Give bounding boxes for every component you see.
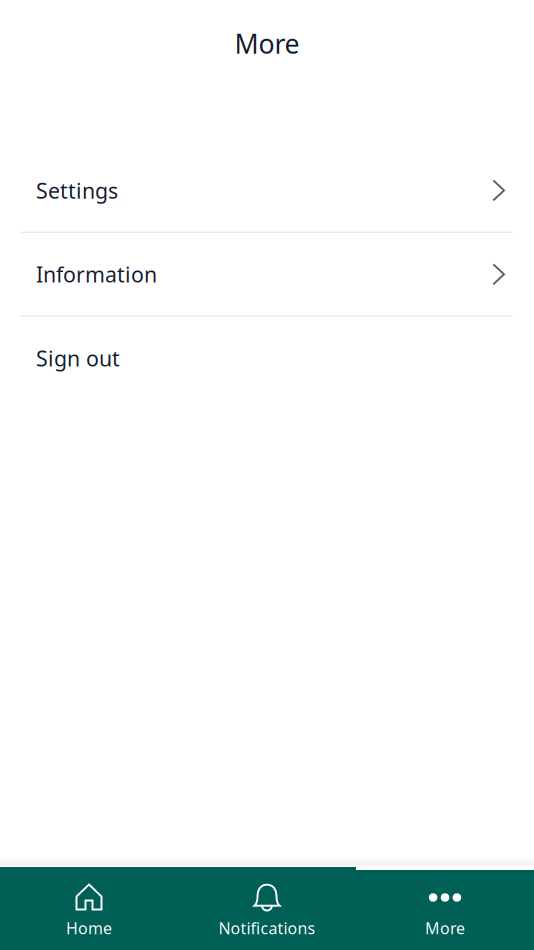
button[interactable]: Notifications xyxy=(178,868,356,950)
button[interactable]: Sign out xyxy=(0,317,534,399)
staticText: Sign out xyxy=(36,344,120,372)
staticText: Notifications xyxy=(218,917,315,939)
button[interactable]: Settings xyxy=(0,149,534,232)
button[interactable]: More xyxy=(356,868,534,950)
button[interactable]: Information xyxy=(0,233,534,315)
staticText: Information xyxy=(36,260,157,288)
staticText: Home xyxy=(66,917,112,939)
staticText: More xyxy=(234,26,299,61)
staticText: Settings xyxy=(36,176,118,204)
staticText: More xyxy=(425,917,465,939)
button[interactable]: Home xyxy=(0,868,178,950)
